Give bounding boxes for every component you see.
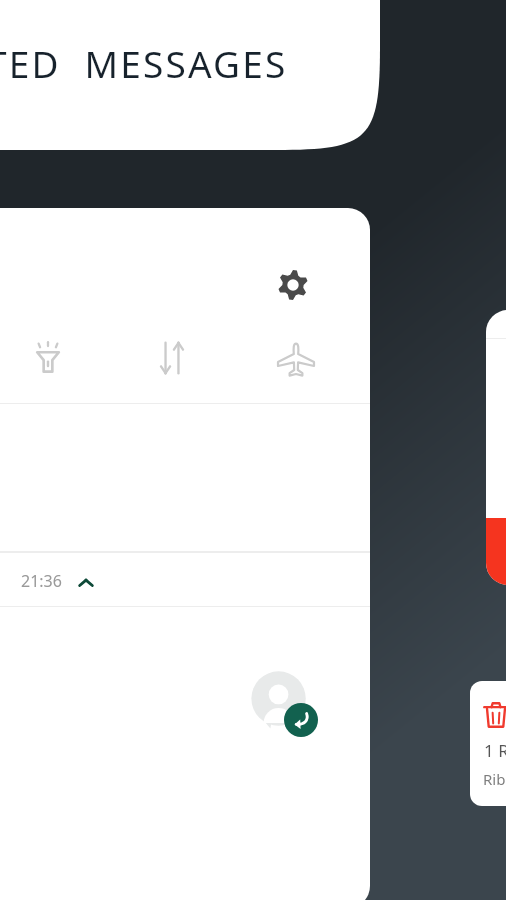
button[interactable]: Delete message <box>470 681 506 806</box>
button[interactable]: 21:36 <box>0 552 370 607</box>
button[interactable]: Airplane mode <box>270 332 322 384</box>
staticText: 21:36 <box>21 570 62 592</box>
button[interactable]: Mobile data <box>146 332 198 384</box>
button[interactable]: Deleted messages header <box>0 0 380 150</box>
button[interactable]: Settings <box>271 263 315 307</box>
staticText: 1 R <box>484 739 506 762</box>
button[interactable]: Message card <box>486 310 506 585</box>
button[interactable]: Reply to contact <box>250 670 318 738</box>
button[interactable]: Flashlight <box>22 332 74 384</box>
staticText: Rib <box>483 769 506 789</box>
staticText: TED MESSAGES <box>0 38 288 88</box>
